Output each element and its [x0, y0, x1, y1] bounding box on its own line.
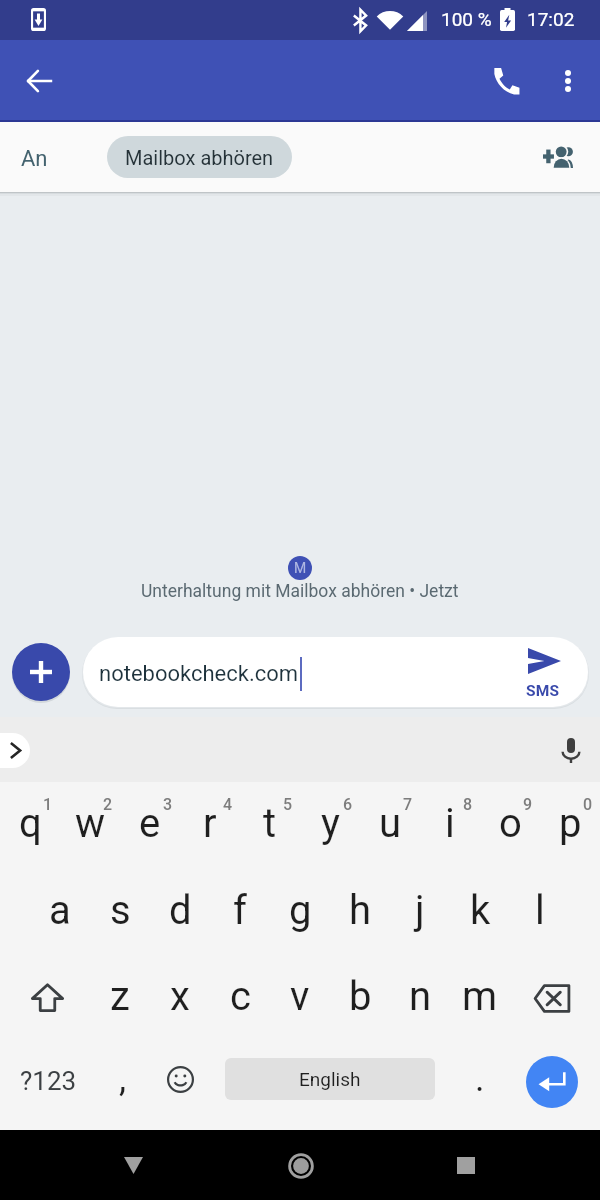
staticText: h: [349, 887, 372, 934]
staticText: w: [75, 800, 106, 847]
button[interactable]: g: [270, 868, 330, 952]
staticText: ,: [119, 1058, 127, 1100]
staticText: 7: [403, 795, 413, 814]
staticText: x: [170, 973, 190, 1020]
staticText: v: [290, 973, 310, 1020]
staticText: Unterhaltung mit Mailbox abhören • Jetzt: [141, 581, 459, 602]
button[interactable]: r: [180, 782, 240, 866]
button[interactable]: l: [510, 868, 570, 952]
button[interactable]: q: [0, 782, 60, 866]
button[interactable]: a: [30, 868, 90, 952]
button[interactable]: m: [450, 954, 510, 1038]
staticText: Mailbox abhören: [125, 146, 274, 169]
button[interactable]: Voice input: [548, 726, 594, 772]
button[interactable]: o: [480, 782, 540, 866]
button[interactable]: Enter: [526, 1056, 578, 1108]
button[interactable]: notebookcheck.com: [83, 637, 588, 707]
staticText: a: [49, 887, 71, 934]
button[interactable]: y: [300, 782, 360, 866]
button[interactable]: e: [120, 782, 180, 866]
button[interactable]: ,: [96, 1037, 150, 1121]
staticText: An: [21, 146, 48, 172]
button[interactable]: w: [60, 782, 120, 866]
button[interactable]: Shift: [0, 954, 90, 1038]
button[interactable]: Add people: [534, 133, 582, 181]
button[interactable]: Add attachment: [12, 643, 70, 701]
button[interactable]: h: [330, 868, 390, 952]
button[interactable]: f: [210, 868, 270, 952]
button[interactable]: .: [450, 1037, 510, 1121]
staticText: ?123: [20, 1066, 77, 1096]
staticText: 0: [583, 795, 593, 814]
button[interactable]: v: [270, 954, 330, 1038]
button[interactable]: Expand toolbar: [0, 733, 30, 768]
button[interactable]: b: [330, 954, 390, 1038]
staticText: 6: [343, 795, 353, 814]
staticText: 2: [103, 795, 113, 814]
staticText: r: [203, 800, 217, 847]
button[interactable]: Back: [16, 57, 64, 105]
button[interactable]: k: [450, 868, 510, 952]
button[interactable]: t: [240, 782, 300, 866]
staticText: q: [19, 800, 42, 847]
staticText: c: [230, 973, 251, 1020]
button[interactable]: Call: [482, 57, 530, 105]
staticText: y: [321, 800, 340, 847]
staticText: s: [110, 887, 131, 934]
staticText: b: [349, 973, 372, 1020]
button[interactable]: u: [360, 782, 420, 866]
staticText: .: [475, 1058, 485, 1100]
staticText: e: [139, 800, 161, 847]
staticText: 100 %: [441, 8, 492, 30]
staticText: f: [233, 887, 247, 934]
staticText: 9: [523, 795, 533, 814]
button[interactable]: More options: [544, 57, 592, 105]
staticText: z: [110, 973, 130, 1020]
staticText: 5: [283, 795, 293, 814]
button[interactable]: j: [390, 868, 450, 952]
staticText: u: [379, 800, 402, 847]
staticText: g: [289, 887, 312, 934]
button[interactable]: n: [390, 954, 450, 1038]
staticText: j: [415, 887, 425, 934]
button[interactable]: s: [90, 868, 150, 952]
staticText: o: [499, 800, 522, 847]
staticText: 8: [463, 795, 473, 814]
button[interactable]: c: [210, 954, 270, 1038]
staticText: SMS: [526, 682, 560, 700]
staticText: 17:02: [527, 8, 575, 30]
button[interactable]: Backspace: [510, 954, 600, 1038]
staticText: t: [263, 800, 277, 847]
staticText: 1: [43, 795, 53, 814]
button[interactable]: Mailbox abhören: [107, 136, 292, 178]
staticText: 3: [163, 795, 173, 814]
button[interactable]: d: [150, 868, 210, 952]
staticText: M: [294, 560, 307, 576]
button[interactable]: x: [150, 954, 210, 1038]
button[interactable]: English: [225, 1058, 435, 1100]
button[interactable]: Back: [105, 1137, 162, 1194]
button[interactable]: Home: [272, 1137, 329, 1194]
button[interactable]: z: [90, 954, 150, 1038]
staticText: notebookcheck.com: [99, 661, 299, 687]
staticText: i: [445, 800, 455, 847]
button[interactable]: ?123: [0, 1037, 96, 1121]
button[interactable]: p: [540, 782, 600, 866]
button[interactable]: Emoji: [150, 1037, 210, 1121]
button[interactable]: Recents: [437, 1137, 494, 1194]
button[interactable]: i: [420, 782, 480, 866]
staticText: m: [462, 973, 498, 1020]
staticText: l: [535, 887, 545, 934]
staticText: p: [559, 800, 582, 847]
staticText: d: [169, 887, 192, 934]
staticText: k: [470, 887, 491, 934]
staticText: n: [409, 973, 432, 1020]
staticText: 4: [223, 795, 233, 814]
staticText: English: [299, 1068, 361, 1090]
